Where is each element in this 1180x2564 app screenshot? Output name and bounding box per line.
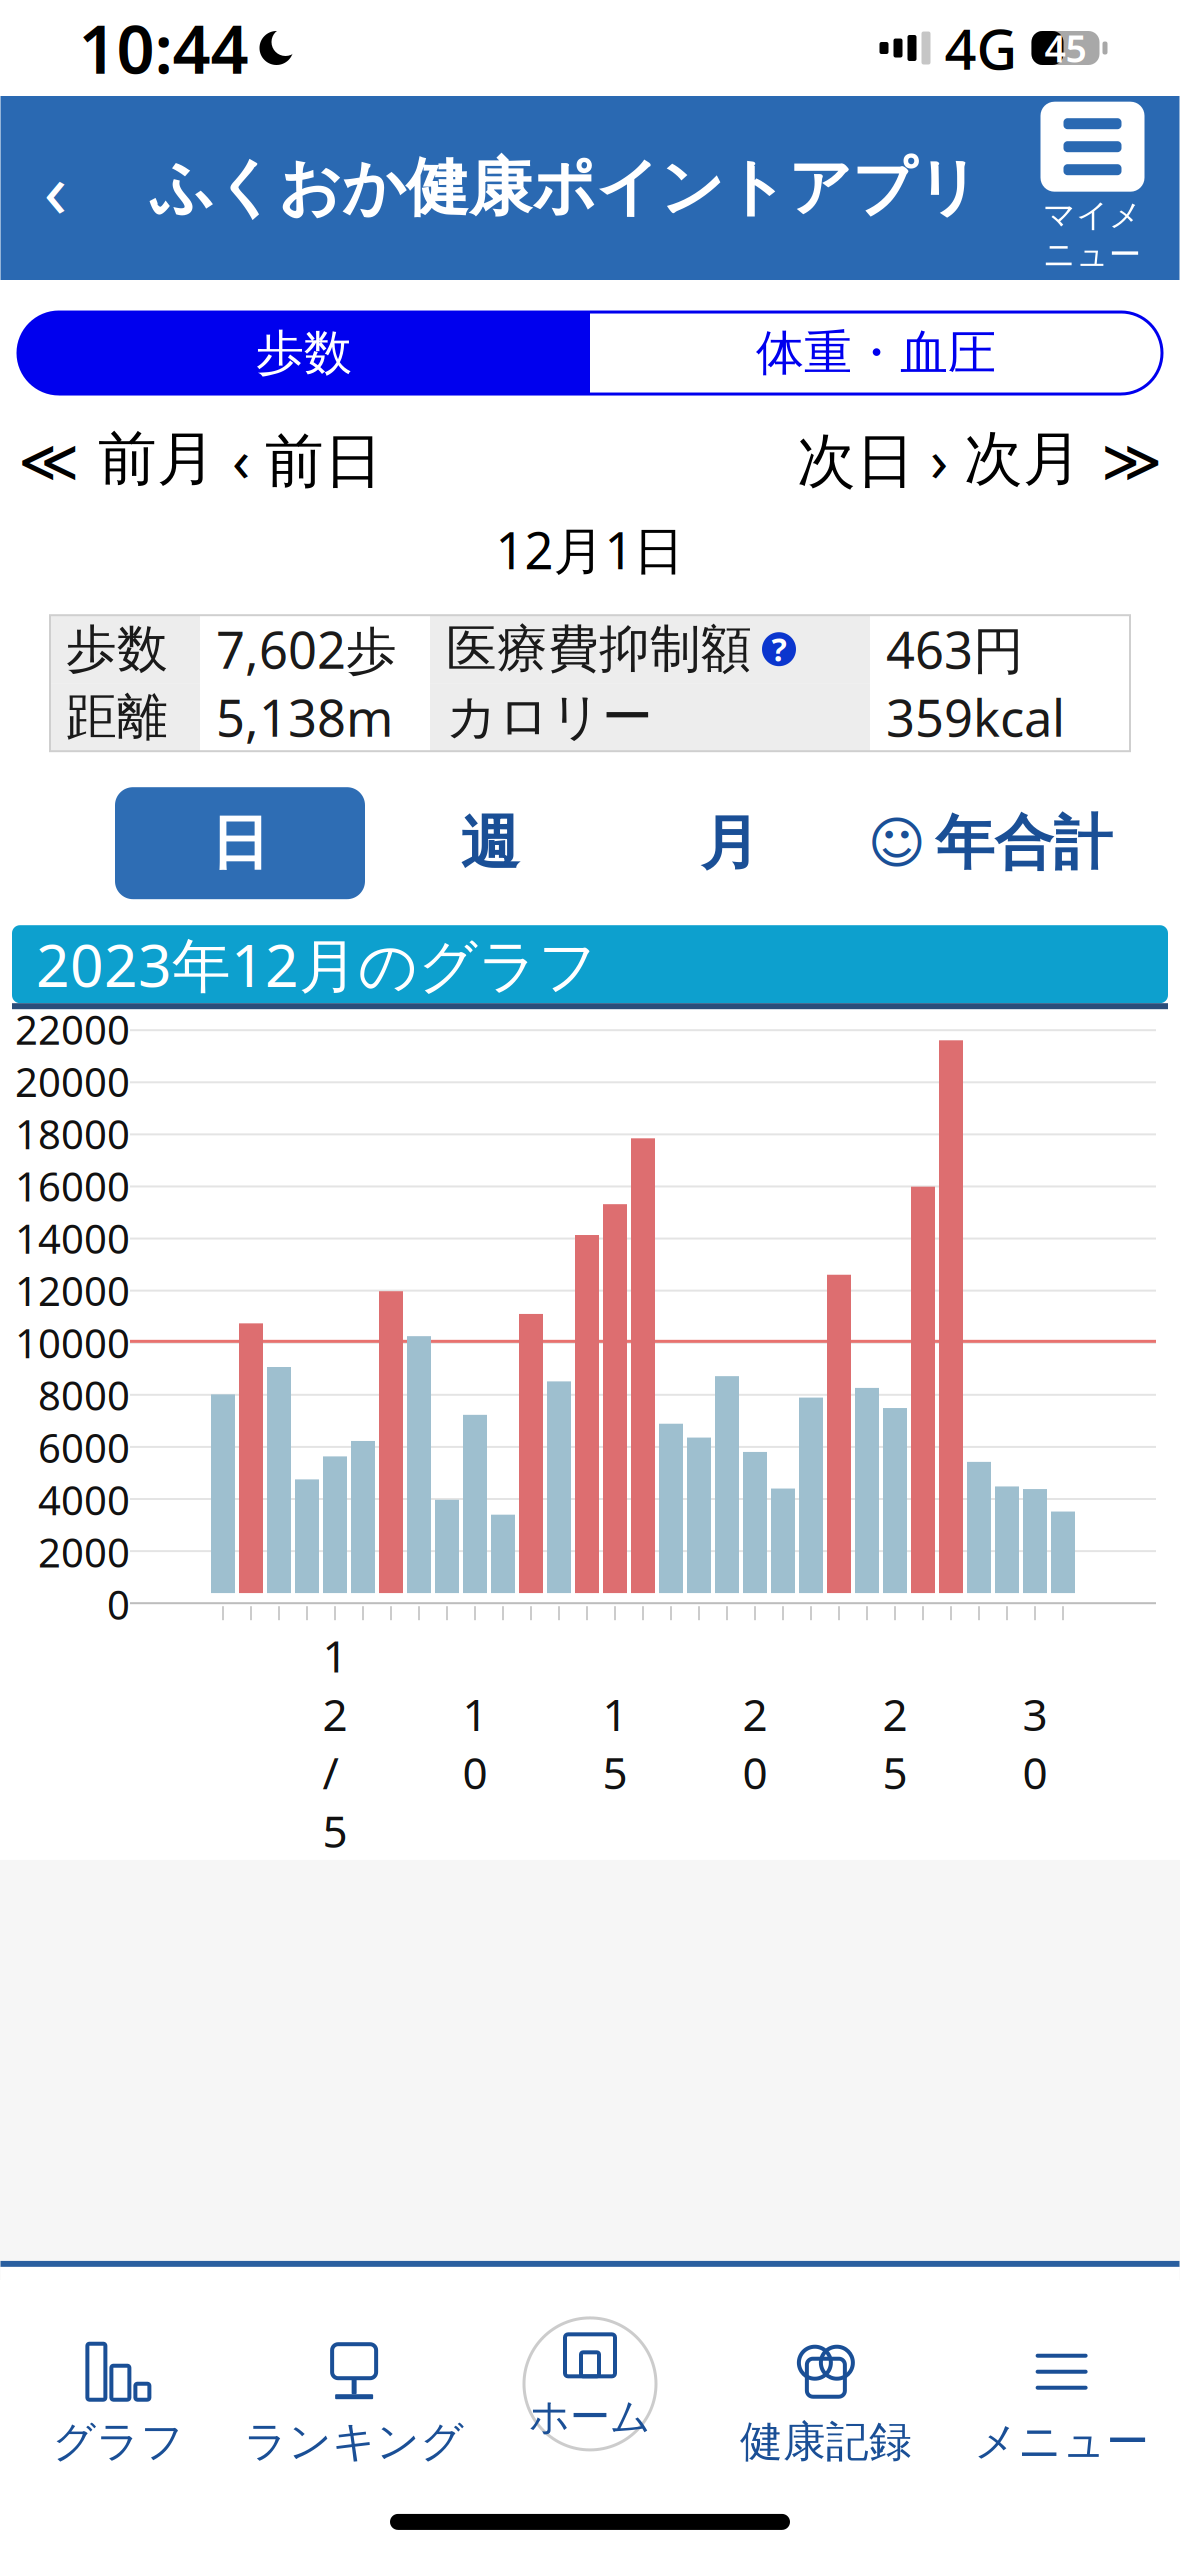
staticText: 次日 › [797,420,948,498]
staticText: ? [771,628,786,670]
staticText: 463円 [886,615,1024,683]
staticText: 医療費抑制額 [446,618,752,680]
staticText: 歩数 [256,323,352,382]
staticText: 18000 [15,1107,130,1160]
staticText: 16000 [15,1159,130,1213]
staticText: 距離 [66,686,168,748]
staticText: 7,602歩 [216,615,397,683]
staticText: 20 [742,1685,767,1801]
staticText: 4G [944,11,1017,85]
staticText: 健康記録 [740,2416,912,2468]
button[interactable]: 日 [115,787,365,899]
button[interactable]: 週 [365,787,615,899]
staticText: 10000 [15,1316,130,1369]
staticText: 45 [1044,23,1086,73]
staticText: 359kcal [886,683,1065,751]
button[interactable]: 次日 › [789,420,956,498]
staticText: 10 [462,1685,487,1801]
staticText: カロリー [446,686,653,748]
button[interactable]: ‹ 前日 [224,420,391,498]
staticText: 14000 [15,1212,130,1265]
button[interactable]: 歩数 [18,312,590,394]
staticText: 25 [882,1685,907,1801]
staticText: 2023年12月のグラフ [36,925,598,1003]
staticText: 8000 [38,1368,130,1422]
staticText: 5,138m [216,683,393,751]
staticText: ‹ 前日 [232,420,383,498]
button[interactable]: ☺ [845,787,1135,899]
staticText: 10:44 [78,4,248,92]
staticText: グラフ [52,2416,184,2468]
button[interactable]: メニュー [944,2269,1180,2499]
button[interactable]: 健康記録 [708,2269,944,2499]
button[interactable]: 体重・血圧 [590,312,1162,394]
staticText: 12000 [15,1264,130,1317]
button[interactable]: 戻る [0,133,110,243]
staticText: 次月 ≫ [964,423,1162,495]
staticText: 22000 [15,1003,130,1056]
staticText: 6000 [38,1421,130,1474]
staticText: 週 [460,807,519,879]
staticText: 日 [210,807,269,879]
button[interactable]: ≪ 前月 [10,423,224,495]
staticText: 月 [700,807,759,879]
button[interactable]: ランキング [236,2269,472,2499]
staticText: 0 [107,1578,130,1631]
staticText: 12/5 [322,1626,347,1860]
button[interactable]: 月 [615,787,845,899]
staticText: 4000 [38,1473,130,1526]
staticText: 年合計 [935,807,1112,879]
button[interactable]: 次月 ≫ [956,423,1170,495]
staticText: メニュー [974,2416,1149,2468]
button[interactable]: マイメニュー [1019,102,1179,274]
staticText: 15 [602,1685,627,1801]
staticText: マイメニュー [1043,196,1142,274]
staticText: 体重・血圧 [756,323,996,382]
staticText: 2000 [38,1525,130,1578]
staticText: 歩数 [66,618,168,680]
staticText: ‹ [43,137,67,239]
button[interactable]: グラフ [0,2269,236,2499]
staticText: ☺ [867,811,925,875]
staticText: ≪ 前月 [18,423,216,495]
staticText: ホーム [529,2392,651,2441]
staticText: 20000 [15,1055,130,1108]
staticText: ランキング [244,2416,464,2468]
staticText: 30 [1022,1685,1047,1801]
staticText: ふくおか健康ポイントアプリ [150,149,980,226]
button[interactable]: ホーム [472,2284,708,2484]
button[interactable]: 医療費抑制額とは [762,628,796,670]
staticText: 12月1日 [495,516,684,583]
